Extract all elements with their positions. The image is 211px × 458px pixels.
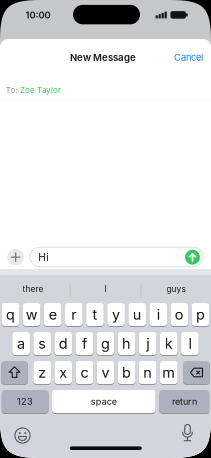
staticText: To: (5, 85, 17, 95)
button[interactable]: h (118, 331, 135, 355)
staticText: l (188, 335, 191, 352)
button[interactable]: o (171, 302, 188, 326)
staticText: guys (166, 284, 185, 294)
button[interactable]: t (86, 302, 104, 326)
staticText: s (38, 335, 46, 352)
staticText: t (92, 306, 97, 323)
staticText: i (157, 306, 160, 323)
button[interactable]: I (71, 279, 140, 299)
staticText: New Message (70, 52, 136, 63)
button[interactable]: d (54, 331, 72, 355)
staticText: d (59, 335, 68, 352)
staticText: u (133, 306, 142, 323)
staticText: v (101, 364, 109, 381)
staticText: there (22, 284, 43, 294)
staticText: r (71, 306, 76, 323)
button[interactable]: g (97, 331, 114, 355)
button[interactable]: m (160, 360, 178, 384)
button[interactable]: y (107, 302, 125, 326)
button[interactable]: p (192, 302, 209, 326)
staticText: q (6, 306, 15, 323)
button[interactable]: r (65, 302, 83, 326)
button[interactable]: l (181, 331, 199, 355)
button[interactable]: w (23, 302, 40, 326)
button[interactable]: 123 (2, 389, 48, 413)
staticText: I (104, 284, 106, 294)
button[interactable]: k (160, 331, 178, 355)
staticText: 10:00 (25, 9, 50, 21)
staticText: return (172, 396, 197, 407)
button[interactable]: Delete (183, 360, 210, 384)
staticText: o (175, 306, 184, 323)
staticText: h (122, 335, 131, 352)
staticText: Hi (38, 251, 48, 264)
button[interactable]: To: (0, 81, 211, 99)
button[interactable]: there (0, 279, 67, 299)
button[interactable]: space (52, 389, 155, 413)
button[interactable]: Apps (7, 249, 24, 265)
button[interactable]: Send (185, 250, 200, 265)
staticText: n (143, 364, 152, 381)
staticText: x (59, 364, 67, 381)
staticText: z (38, 364, 46, 381)
button[interactable]: z (33, 360, 51, 384)
staticText: j (146, 335, 149, 352)
button[interactable]: f (76, 331, 93, 355)
button[interactable]: Dictation (177, 423, 197, 445)
staticText: k (165, 335, 173, 352)
button[interactable]: u (128, 302, 146, 326)
button[interactable]: a (12, 331, 30, 355)
staticText: y (112, 306, 120, 323)
button[interactable]: c (76, 360, 93, 384)
staticText: w (26, 306, 38, 323)
button[interactable]: q (2, 302, 19, 326)
button[interactable]: s (33, 331, 51, 355)
button[interactable]: n (139, 360, 156, 384)
button[interactable]: Shift (1, 360, 28, 384)
button[interactable]: return (159, 389, 209, 413)
staticText: 123 (17, 396, 33, 407)
button[interactable]: b (118, 360, 135, 384)
staticText: Zoe Taylor (20, 85, 61, 95)
button[interactable]: j (139, 331, 156, 355)
button[interactable]: e (44, 302, 62, 326)
button[interactable]: i (149, 302, 167, 326)
button[interactable]: Cancel (174, 52, 203, 63)
staticText: e (49, 306, 57, 323)
button[interactable]: Emoji (12, 425, 32, 445)
button[interactable]: guys (141, 279, 210, 299)
staticText: Cancel (174, 52, 203, 63)
staticText: a (17, 335, 25, 352)
staticText: c (80, 364, 88, 381)
staticText: space (91, 396, 117, 407)
staticText: p (196, 306, 205, 323)
staticText: b (122, 364, 131, 381)
staticText: m (162, 364, 175, 381)
staticText: g (101, 335, 110, 352)
staticText: f (82, 335, 87, 352)
button[interactable]: x (54, 360, 72, 384)
button[interactable]: v (97, 360, 114, 384)
